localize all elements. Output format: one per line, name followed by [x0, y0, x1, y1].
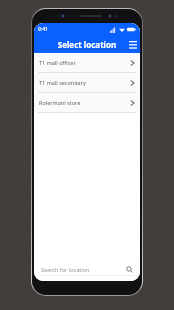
button[interactable]: Menu	[125, 37, 140, 52]
staticText: T1 mall secondary	[39, 79, 130, 86]
staticText: 9:41	[38, 26, 48, 33]
button[interactable]: T1 mall officer	[34, 53, 140, 72]
staticText: Rolermani store	[39, 99, 130, 106]
staticText: Search for location	[41, 266, 126, 273]
staticText: T1 mall officer	[39, 59, 130, 66]
button[interactable]: T1 mall secondary	[34, 73, 140, 92]
staticText: Select location	[34, 39, 140, 50]
button[interactable]: Search for location	[38, 263, 136, 276]
button[interactable]: Rolermani store	[34, 93, 140, 112]
